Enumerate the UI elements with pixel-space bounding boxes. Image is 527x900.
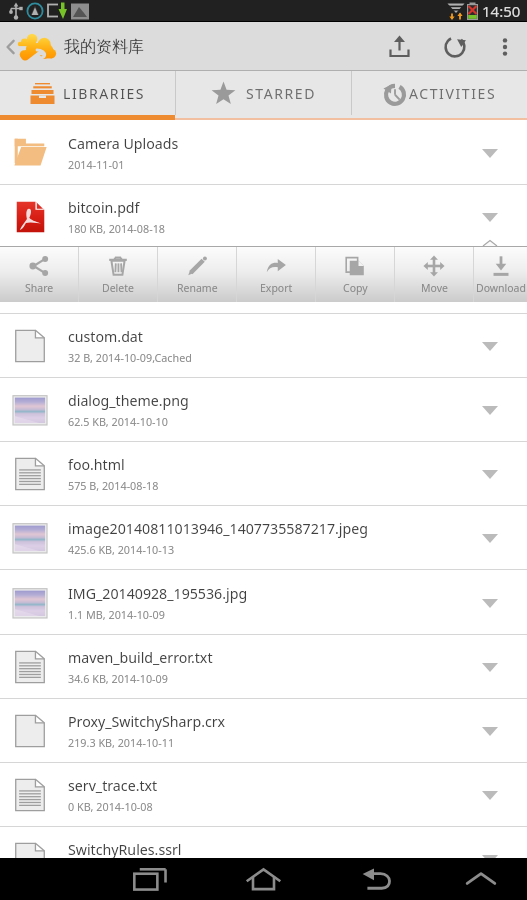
staticText: SwitchyRules.ssrl	[68, 840, 182, 859]
button[interactable]: Proxy_SwitchySharp.crx	[0, 699, 527, 763]
button[interactable]: bitcoin.pdf	[0, 185, 527, 249]
staticText: LIBRARIES	[63, 84, 146, 103]
button[interactable]: ACTIVITIES	[352, 71, 527, 115]
button[interactable]: LIBRARIES	[0, 71, 175, 115]
button[interactable]: Recents	[93, 858, 206, 900]
button[interactable]: Share	[0, 247, 78, 302]
button[interactable]: maven_build_error.txt	[0, 635, 527, 699]
button[interactable]: serv_trace.txt	[0, 763, 527, 827]
button[interactable]: More options	[483, 22, 527, 71]
button[interactable]: More	[453, 827, 527, 891]
button[interactable]: Home	[206, 858, 320, 900]
button[interactable]: image20140811013946_1407735587217.jpeg	[0, 506, 527, 570]
button[interactable]: Delete	[79, 247, 157, 302]
button[interactable]: Back	[320, 858, 434, 900]
staticText: 0 KB, 2014-10-08	[68, 799, 153, 814]
staticText: 62.5 KB, 2014-10-10	[68, 414, 168, 429]
staticText: 575 B, 2014-08-18	[68, 478, 159, 493]
button[interactable]: Upload	[371, 22, 427, 71]
button[interactable]: Download	[462, 247, 527, 302]
button[interactable]: More	[453, 378, 527, 442]
button[interactable]: Export	[237, 247, 315, 302]
staticText: 32 B, 2014-10-09,Cached	[68, 350, 192, 365]
button[interactable]: ccnet.config	[0, 250, 527, 314]
staticText: Proxy_SwitchySharp.crx	[68, 712, 226, 731]
button[interactable]: Rename	[158, 247, 236, 302]
button[interactable]: IMG_20140928_195536.jpg	[0, 571, 527, 635]
button[interactable]: STARRED	[176, 71, 351, 115]
button[interactable]: dialog_theme.png	[0, 378, 527, 442]
staticText: Rename	[177, 281, 218, 295]
staticText: 2014-11-01	[68, 157, 125, 172]
staticText: Copy	[343, 281, 368, 295]
button[interactable]: More	[453, 571, 527, 635]
button[interactable]: More	[453, 442, 527, 506]
staticText: 219.3 KB, 2014-10-11	[68, 735, 175, 750]
staticText: Export	[260, 281, 293, 295]
staticText: 1.1 MB, 2014-10-09	[68, 607, 165, 622]
button[interactable]: Show menu	[434, 858, 527, 900]
staticText: Share	[25, 281, 54, 295]
button[interactable]: More	[453, 314, 527, 378]
button[interactable]: More	[453, 635, 527, 699]
staticText: Camera Uploads	[68, 134, 179, 153]
staticText: foo.html	[68, 455, 125, 474]
staticText: 14:50	[482, 1, 521, 21]
staticText: 1.2 KB, 2014-09-21	[68, 286, 162, 301]
staticText: Delete	[102, 281, 134, 295]
staticText: maven_build_error.txt	[68, 648, 213, 667]
staticText: Move	[421, 281, 448, 295]
staticText: image20140811013946_1407735587217.jpeg	[68, 519, 368, 538]
button[interactable]: More	[453, 185, 527, 249]
button[interactable]: foo.html	[0, 442, 527, 506]
button[interactable]: custom.dat	[0, 314, 527, 378]
staticText: 我的资料库	[64, 37, 144, 57]
staticText: Download	[476, 281, 526, 295]
button[interactable]: More	[453, 121, 527, 185]
staticText: dialog_theme.png	[68, 391, 189, 410]
staticText: serv_trace.txt	[68, 776, 158, 795]
staticText: 180 KB, 2014-08-18	[68, 221, 165, 236]
staticText: bitcoin.pdf	[68, 198, 140, 217]
staticText: custom.dat	[68, 327, 143, 346]
button[interactable]: Move	[395, 247, 473, 302]
button[interactable]: More	[453, 506, 527, 570]
staticText: ACTIVITIES	[409, 84, 497, 103]
button[interactable]: Refresh	[427, 22, 483, 71]
button[interactable]: Copy	[316, 247, 394, 302]
button[interactable]: SwitchyRules.ssrl	[0, 827, 527, 891]
button[interactable]: More	[453, 250, 527, 314]
button[interactable]: More	[453, 699, 527, 763]
staticText: STARRED	[246, 84, 317, 103]
button[interactable]: Camera Uploads	[0, 121, 527, 185]
staticText: ccnet.config	[68, 263, 149, 282]
staticText: 425.6 KB, 2014-10-13	[68, 542, 175, 557]
staticText: IMG_20140928_195536.jpg	[68, 584, 248, 603]
staticText: 34.6 KB, 2014-10-09	[68, 671, 168, 686]
button[interactable]: More	[453, 763, 527, 827]
button[interactable]: Up	[0, 22, 56, 71]
